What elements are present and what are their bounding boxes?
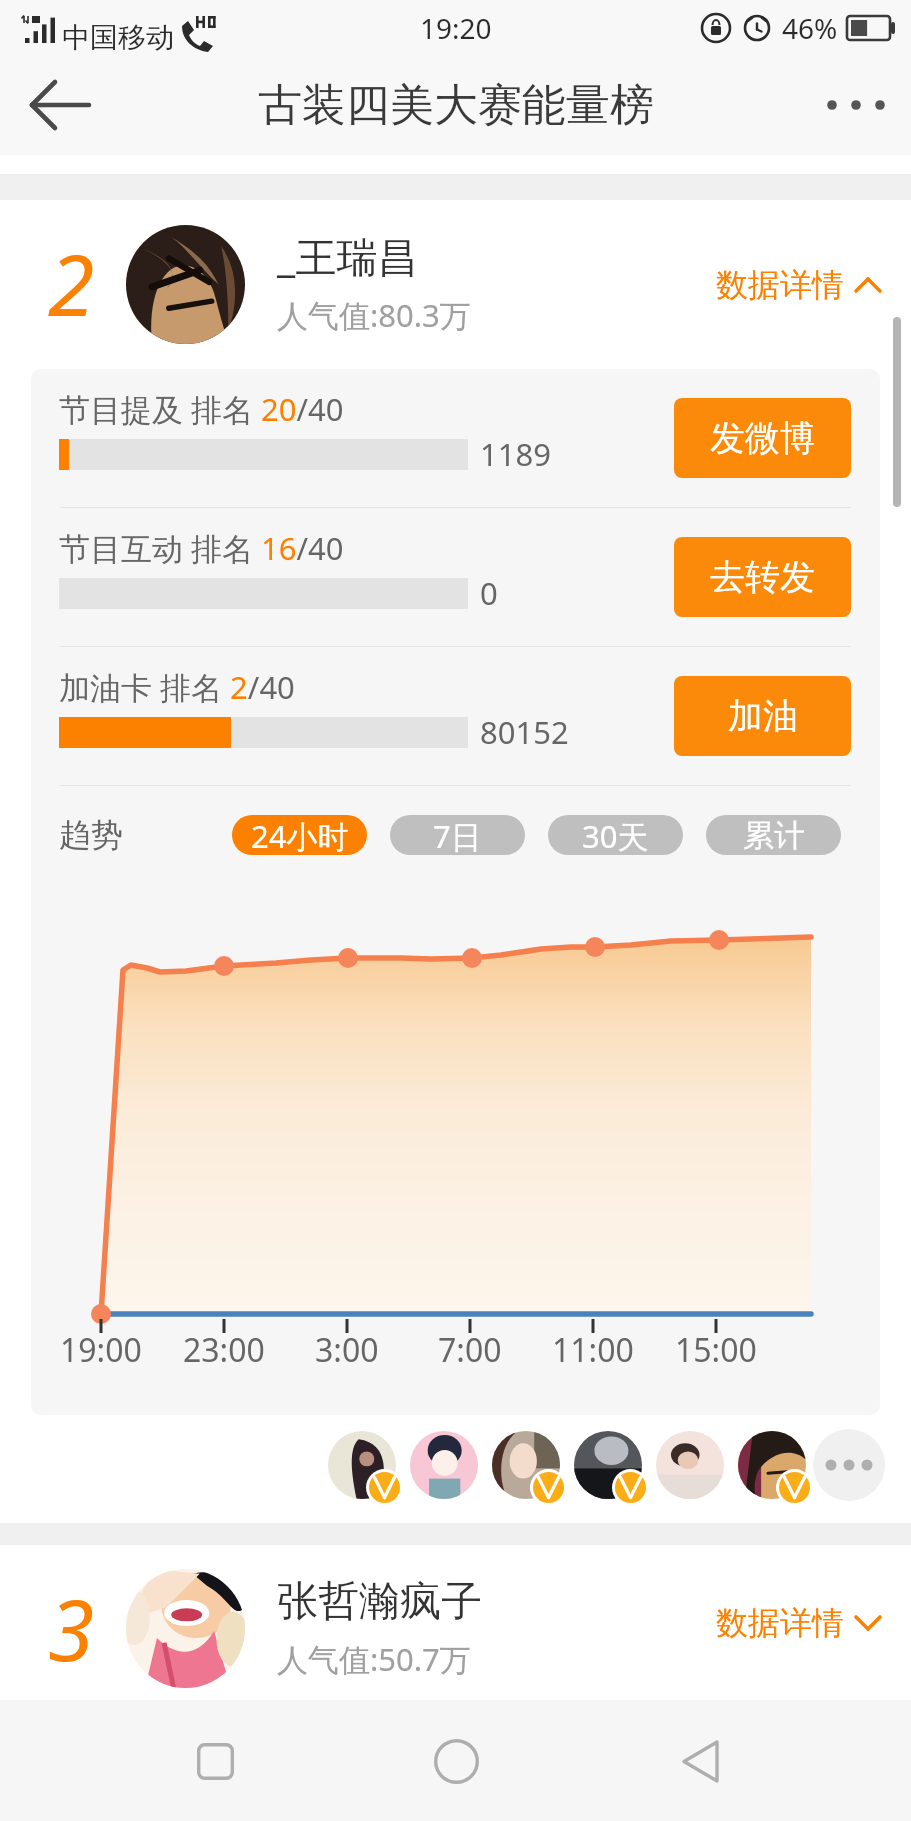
staticText: 人气值:80.3万 — [277, 294, 471, 336]
staticText: 3 — [48, 1571, 95, 1685]
staticText: 中国移动 — [62, 20, 174, 55]
staticText: 15:00 — [675, 1328, 757, 1372]
staticText: 发微博 — [710, 416, 815, 460]
button[interactable]: User avatar — [410, 1431, 478, 1499]
button[interactable]: 7日 — [390, 815, 525, 855]
button[interactable]: 30天 — [548, 815, 683, 855]
button[interactable]: User avatar — [328, 1431, 396, 1499]
staticText: 3:00 — [315, 1328, 379, 1372]
staticText: 1189 — [480, 433, 551, 475]
button[interactable]: User avatar — [492, 1431, 560, 1499]
button[interactable]: Home — [396, 1700, 516, 1821]
button[interactable]: 3 — [0, 1545, 911, 1700]
staticText: 去转发 — [710, 555, 815, 599]
button[interactable]: 24小时 — [232, 815, 367, 855]
staticText: 0 — [480, 572, 498, 614]
staticText: 2 — [48, 226, 95, 340]
staticText: 23:00 — [183, 1328, 265, 1372]
staticText: 节目提及 排名 20/40 — [59, 388, 344, 430]
staticText: 古装四美大赛能量榜 — [258, 78, 654, 133]
staticText: 趋势 — [59, 815, 123, 855]
staticText: 80152 — [480, 711, 569, 753]
button[interactable]: More users — [813, 1429, 885, 1501]
button[interactable]: 发微博 — [674, 398, 851, 478]
button[interactable]: Back — [640, 1700, 760, 1821]
staticText: 数据详情 — [716, 1603, 844, 1643]
button[interactable]: 加油 — [674, 676, 851, 756]
button[interactable]: User avatar — [656, 1431, 724, 1499]
staticText: 7:00 — [438, 1328, 502, 1372]
button[interactable]: 累计 — [706, 815, 841, 855]
staticText: 数据详情 — [716, 265, 844, 305]
staticText: _王瑞昌 — [277, 228, 419, 284]
button[interactable]: 2 — [0, 200, 911, 369]
button[interactable]: User avatar — [738, 1431, 806, 1499]
staticText: 加油卡 排名 2/40 — [59, 666, 295, 708]
staticText: 11:00 — [552, 1328, 634, 1372]
staticText: 节目互动 排名 16/40 — [59, 527, 344, 569]
button[interactable]: Back — [0, 55, 120, 155]
staticText: 46% — [782, 9, 838, 47]
staticText: 7日 — [433, 815, 482, 855]
staticText: 张哲瀚疯子 — [277, 1576, 482, 1628]
button[interactable]: User avatar — [574, 1431, 642, 1499]
staticText: 19:20 — [420, 9, 492, 47]
staticText: 人气值:50.7万 — [277, 1638, 471, 1680]
button[interactable]: 数据详情 — [716, 1603, 882, 1643]
staticText: 30天 — [582, 815, 649, 855]
staticText: 19:00 — [60, 1328, 142, 1372]
button[interactable]: More options — [801, 55, 911, 155]
button[interactable]: 去转发 — [674, 537, 851, 617]
button[interactable]: 数据详情 — [716, 265, 882, 305]
staticText: 累计 — [743, 816, 805, 855]
staticText: 24小时 — [251, 815, 349, 855]
staticText: 加油 — [728, 694, 798, 738]
button[interactable]: Recents — [155, 1700, 275, 1821]
